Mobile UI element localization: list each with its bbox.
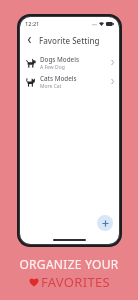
button[interactable]: Add favorite: [97, 215, 113, 231]
staticText: A Few Dog: [40, 64, 65, 71]
staticText: Dogs Models: [40, 55, 79, 64]
button[interactable]: Dogs Models: [20, 53, 119, 72]
staticText: 12:21: [25, 20, 40, 28]
staticText: More Cat: [40, 83, 62, 90]
staticText: ORGANIZE YOUR: [19, 256, 119, 272]
button[interactable]: Cats Models: [20, 72, 119, 91]
button[interactable]: Back: [22, 33, 36, 47]
staticText: Cats Models: [40, 74, 77, 83]
staticText: FAVORITES: [41, 273, 110, 291]
staticText: Favorite Setting: [39, 35, 100, 46]
